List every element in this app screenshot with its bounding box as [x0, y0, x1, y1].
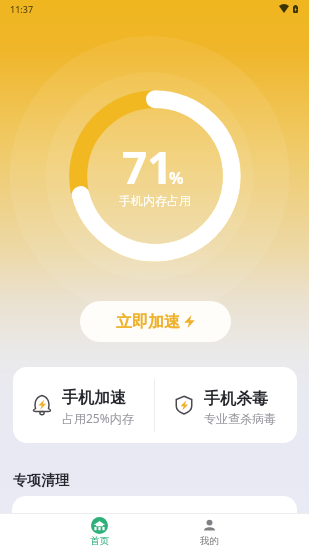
staticText: 11:37	[10, 3, 34, 15]
staticText: %	[169, 167, 184, 189]
staticText: 71	[122, 137, 173, 197]
staticText: 立即加速	[116, 312, 180, 332]
staticText: 占用25%内存	[62, 410, 134, 426]
staticText: 手机加速	[62, 388, 126, 408]
button[interactable]: 我的	[154, 514, 264, 547]
staticText: 首页	[90, 535, 109, 547]
staticText: 专业查杀病毒	[204, 411, 276, 426]
staticText: 专项清理	[13, 472, 69, 490]
button[interactable]: 立即加速	[80, 301, 231, 342]
staticText: 我的	[200, 535, 219, 547]
button[interactable]: 手机加速	[13, 367, 154, 443]
staticText: 手机杀毒	[204, 389, 268, 409]
staticText: 手机内存占用	[119, 193, 191, 208]
button[interactable]: 首页	[45, 514, 154, 547]
button[interactable]: 手机杀毒	[155, 367, 297, 443]
